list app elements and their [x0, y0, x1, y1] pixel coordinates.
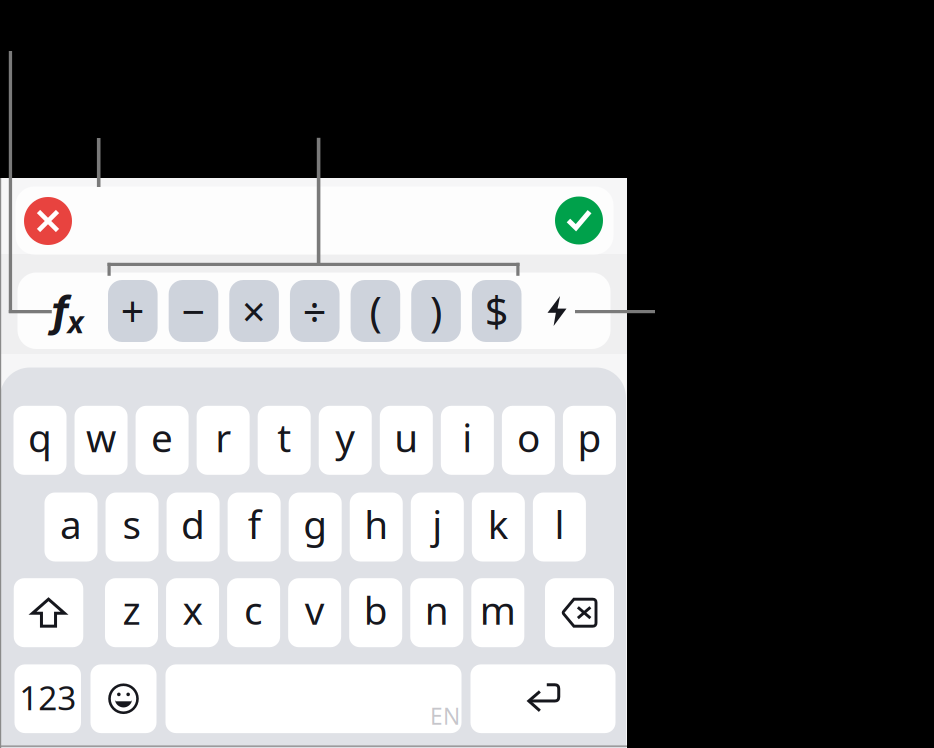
- staticText: h: [364, 498, 388, 550]
- staticText: u: [394, 412, 418, 463]
- button[interactable]: Functions: [46, 287, 92, 337]
- button[interactable]: h: [350, 492, 403, 561]
- staticText: i: [462, 412, 472, 463]
- staticText: 123: [19, 675, 76, 719]
- button[interactable]: g: [289, 492, 342, 561]
- button[interactable]: Emoji: [90, 664, 156, 733]
- staticText: e: [151, 412, 173, 463]
- button[interactable]: p: [563, 406, 616, 475]
- staticText: $: [485, 284, 509, 338]
- button[interactable]: −: [169, 280, 218, 342]
- staticText: ×: [242, 284, 266, 338]
- button[interactable]: 123: [14, 664, 81, 733]
- staticText: v: [305, 584, 325, 635]
- button[interactable]: Shift: [14, 578, 83, 647]
- staticText: s: [123, 498, 142, 550]
- button[interactable]: i: [441, 406, 494, 475]
- staticText: −: [181, 284, 205, 338]
- staticText: y: [335, 412, 355, 463]
- staticText: j: [432, 498, 442, 550]
- staticText: r: [215, 412, 231, 463]
- staticText: EN: [430, 701, 460, 731]
- staticText: +: [121, 284, 145, 338]
- staticText: ÷: [303, 284, 327, 338]
- button[interactable]: (: [351, 280, 400, 342]
- staticText: c: [244, 584, 263, 635]
- button[interactable]: +: [108, 280, 158, 342]
- button[interactable]: Space: [165, 664, 461, 733]
- button[interactable]: ÷: [290, 280, 339, 342]
- staticText: x: [183, 584, 203, 635]
- staticText: z: [122, 584, 140, 635]
- button[interactable]: d: [167, 492, 220, 561]
- button[interactable]: b: [349, 578, 402, 647]
- button[interactable]: z: [105, 578, 158, 647]
- button[interactable]: x: [166, 578, 219, 647]
- button[interactable]: y: [319, 406, 372, 475]
- staticText: k: [488, 498, 509, 550]
- button[interactable]: f: [228, 492, 281, 561]
- staticText: x: [67, 303, 84, 340]
- button[interactable]: r: [197, 406, 250, 475]
- button[interactable]: $: [472, 280, 521, 342]
- button[interactable]: ): [411, 280, 461, 342]
- button[interactable]: k: [472, 492, 525, 561]
- staticText: g: [303, 498, 327, 550]
- button[interactable]: t: [258, 406, 311, 475]
- button[interactable]: j: [411, 492, 464, 561]
- staticText: (: [369, 284, 381, 338]
- staticText: l: [554, 498, 564, 550]
- button[interactable]: l: [533, 492, 586, 561]
- staticText: n: [425, 584, 449, 635]
- button[interactable]: w: [74, 406, 127, 475]
- staticText: q: [28, 412, 52, 463]
- button[interactable]: s: [106, 492, 159, 561]
- staticText: f: [248, 498, 261, 550]
- button[interactable]: u: [380, 406, 433, 475]
- button[interactable]: Return: [470, 664, 615, 733]
- button[interactable]: Delete: [545, 578, 614, 647]
- button[interactable]: e: [136, 406, 189, 475]
- staticText: a: [60, 498, 82, 550]
- button[interactable]: n: [410, 578, 463, 647]
- staticText: f: [51, 285, 68, 337]
- staticText: p: [577, 412, 601, 463]
- staticText: m: [480, 584, 516, 635]
- button[interactable]: v: [288, 578, 341, 647]
- button[interactable]: o: [502, 406, 555, 475]
- staticText: w: [86, 412, 116, 463]
- button[interactable]: m: [471, 578, 524, 647]
- staticText: t: [277, 412, 291, 463]
- staticText: o: [517, 412, 540, 463]
- button[interactable]: Accept: [555, 196, 603, 244]
- button[interactable]: a: [44, 492, 97, 561]
- button[interactable]: c: [227, 578, 280, 647]
- button[interactable]: q: [13, 406, 66, 475]
- button[interactable]: Quick formulas: [537, 289, 577, 333]
- button[interactable]: Cancel: [24, 197, 72, 245]
- staticText: ): [430, 284, 442, 338]
- staticText: b: [364, 584, 388, 635]
- button[interactable]: ×: [229, 280, 279, 342]
- staticText: d: [181, 498, 205, 550]
